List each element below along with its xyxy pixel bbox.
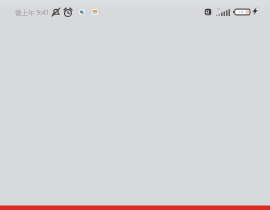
- button[interactable]: SIM card: [204, 8, 212, 16]
- button[interactable]: Notification: [92, 9, 98, 15]
- button[interactable]: Charging: [251, 7, 259, 17]
- button[interactable]: Alarm set: [63, 7, 73, 17]
- staticText: 微上午 9:41: [15, 8, 50, 17]
- button[interactable]: Notification: [79, 9, 85, 15]
- button[interactable]: Battery: [233, 8, 250, 16]
- button[interactable]: Silent mode: [51, 7, 61, 17]
- button[interactable]: Signal strength: [216, 7, 230, 17]
